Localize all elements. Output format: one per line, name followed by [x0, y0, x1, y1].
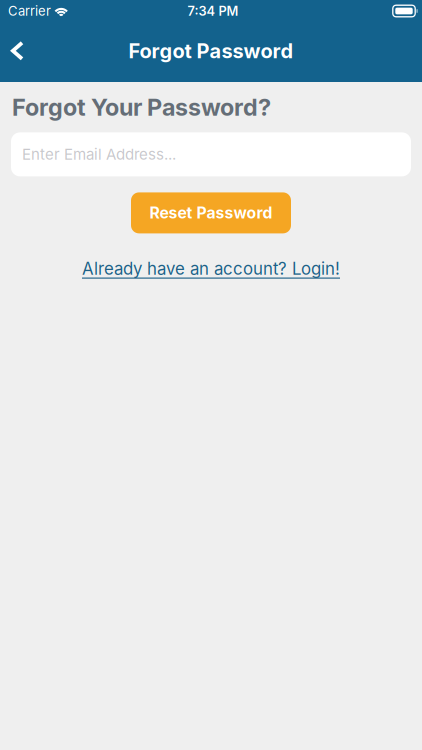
staticText: Carrier [8, 3, 51, 19]
button[interactable]: Reset Password [131, 192, 291, 233]
staticText: 7:34 PM [187, 3, 238, 19]
button[interactable]: Back [0, 27, 35, 75]
staticText: Reset Password [149, 203, 272, 222]
staticText: Forgot Your Password? [12, 93, 271, 121]
staticText: Forgot Password [128, 39, 293, 63]
button[interactable]: Already have an account? Login! [82, 252, 340, 285]
staticText: Already have an account? Login! [82, 258, 340, 279]
staticText: Enter Email Address... [22, 145, 176, 163]
